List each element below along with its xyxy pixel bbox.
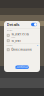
button[interactable]: All <box>36 44 37 46</box>
staticText: Lona <box>11 36 15 38</box>
staticText: Onrec maanre <box>11 48 32 51</box>
button[interactable]: Tu_aset <box>4 38 40 43</box>
staticText: DETAILS <box>6 29 12 31</box>
staticText: Details <box>6 22 19 27</box>
button[interactable]: Onrec maanre <box>4 47 40 52</box>
staticText: SHARED <box>6 44 12 46</box>
button[interactable]: Toggle details <box>30 22 37 27</box>
button[interactable]: Tu_aset ec cu <box>4 32 40 38</box>
staticText: Continue <box>15 65 29 69</box>
staticText: Tu_aset ec cu <box>11 32 29 36</box>
button[interactable]: Continue <box>15 65 29 69</box>
staticText: Tu_aset <box>11 39 21 42</box>
staticText: All <box>36 44 37 46</box>
